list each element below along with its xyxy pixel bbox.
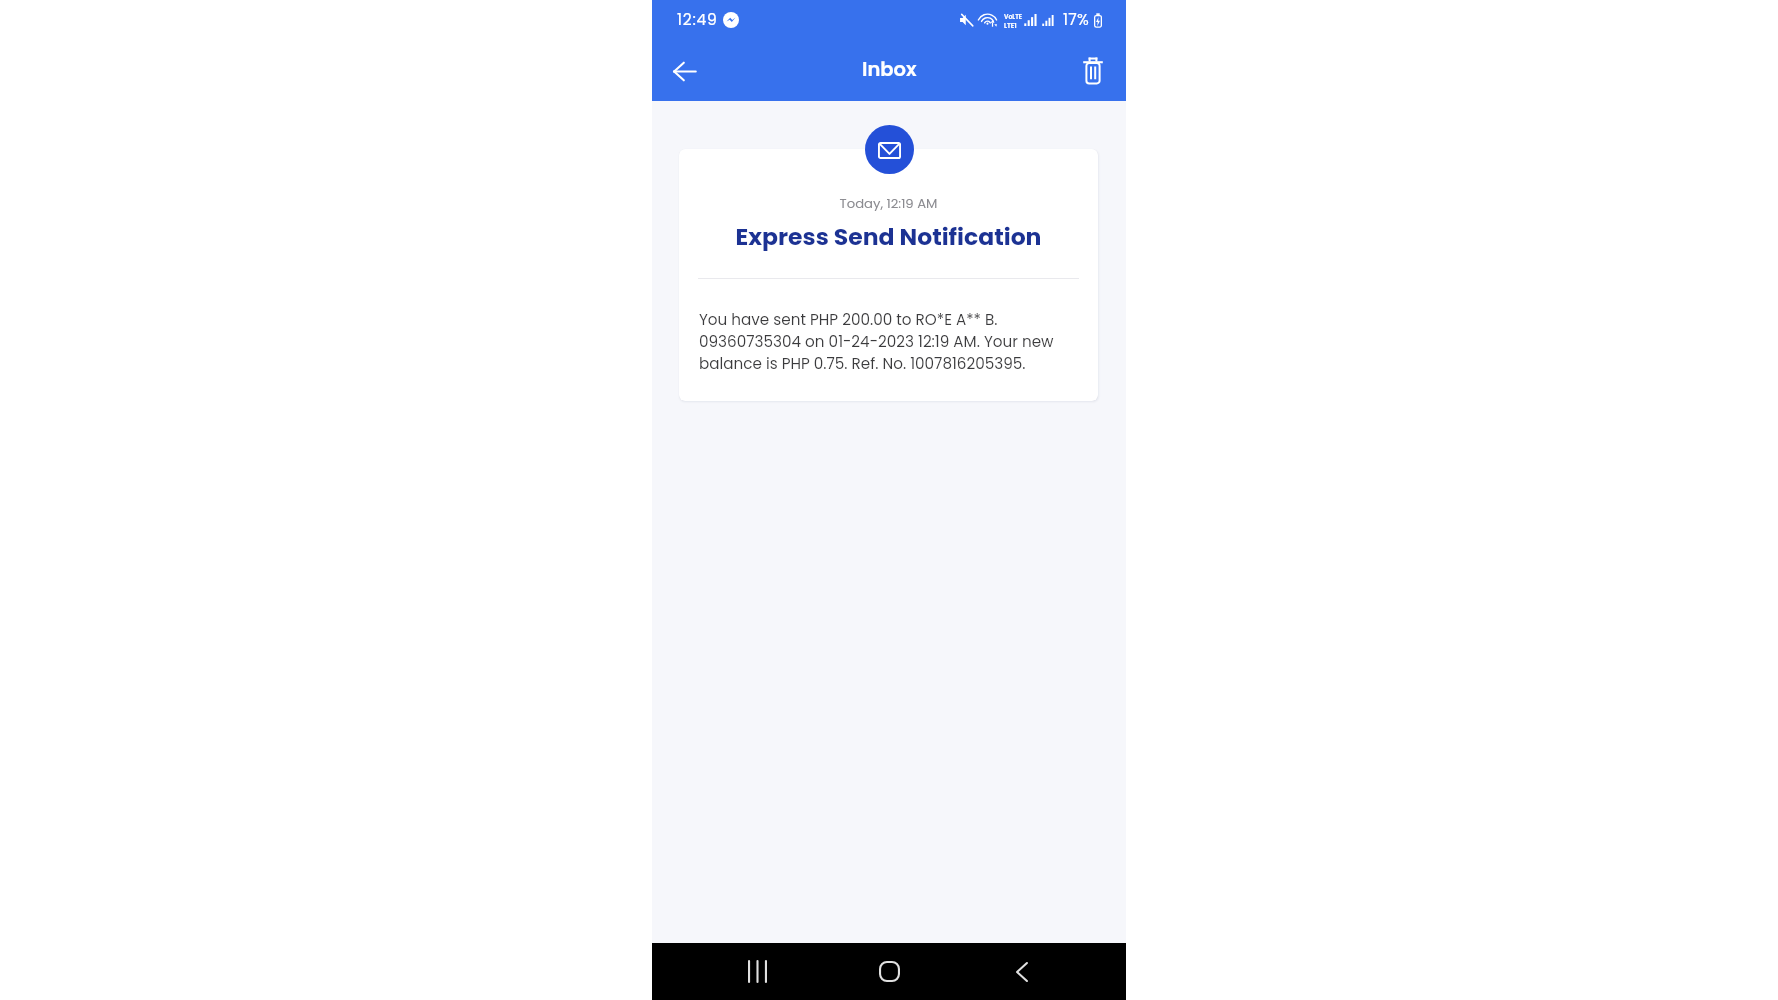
staticText: VoLTE <box>1004 12 1022 21</box>
staticText: Express Send Notification <box>679 220 1098 253</box>
button[interactable]: Back <box>992 943 1052 1000</box>
button[interactable]: Back <box>662 49 706 93</box>
staticText: Today, 12:19 AM <box>679 194 1098 212</box>
staticText: 17% <box>1063 9 1090 31</box>
staticText: 12:49 <box>677 9 718 31</box>
staticText: You have sent PHP 200.00 to RO*E A** B. … <box>699 309 1078 375</box>
staticText: LTE1 <box>1004 21 1017 30</box>
staticText: Inbox <box>862 56 917 83</box>
button[interactable]: Recents <box>727 943 787 1000</box>
button[interactable]: Home <box>859 943 919 1000</box>
button[interactable]: Delete <box>1071 49 1115 93</box>
